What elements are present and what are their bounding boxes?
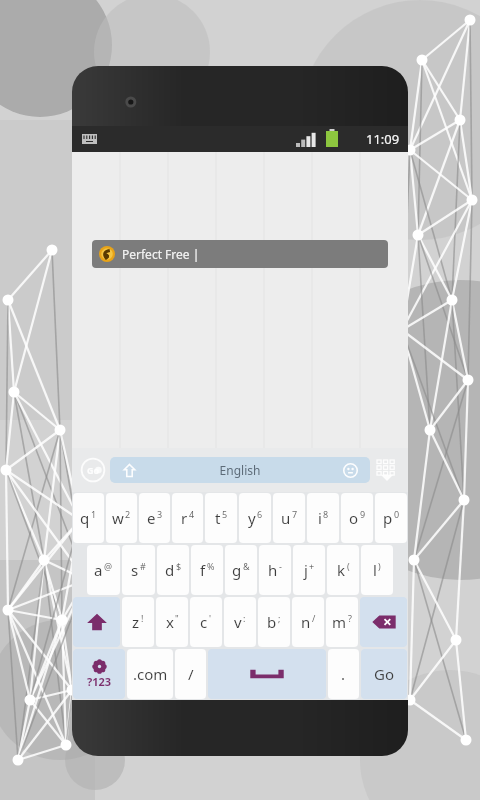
- button[interactable]: z: [122, 597, 154, 647]
- staticText: 8: [323, 508, 329, 520]
- staticText: Go: [374, 664, 394, 684]
- button[interactable]: /: [175, 649, 206, 699]
- staticText: k: [337, 560, 346, 580]
- button[interactable]: g: [225, 545, 257, 595]
- button[interactable]: Perfect Free |: [92, 240, 388, 268]
- staticText: u: [281, 508, 291, 528]
- button[interactable]: d: [157, 545, 189, 595]
- staticText: -: [279, 560, 282, 572]
- button[interactable]: t: [205, 493, 237, 543]
- button[interactable]: a: [87, 545, 120, 595]
- button[interactable]: Symbols and settings: [73, 649, 125, 699]
- button[interactable]: s: [122, 545, 155, 595]
- staticText: 7: [292, 508, 298, 520]
- button[interactable]: y: [239, 493, 271, 543]
- staticText: h: [268, 560, 278, 580]
- button[interactable]: v: [224, 597, 256, 647]
- staticText: Perfect Free |: [122, 246, 200, 262]
- staticText: e: [147, 508, 156, 528]
- button[interactable]: k: [327, 545, 359, 595]
- button[interactable]: Space: [208, 649, 326, 699]
- staticText: d: [165, 560, 175, 580]
- staticText: 6: [257, 508, 263, 520]
- staticText: .: [341, 664, 346, 684]
- staticText: $: [176, 560, 182, 572]
- staticText: (: [347, 560, 350, 572]
- button[interactable]: Shift: [73, 597, 120, 647]
- staticText: t: [215, 508, 221, 528]
- staticText: English: [137, 462, 343, 478]
- staticText: %: [207, 560, 215, 572]
- button[interactable]: f: [191, 545, 223, 595]
- staticText: a: [94, 560, 103, 580]
- button[interactable]: r: [172, 493, 203, 543]
- button[interactable]: b: [258, 597, 290, 647]
- button[interactable]: Hide keyboard: [370, 453, 404, 487]
- staticText: 3: [157, 508, 163, 520]
- staticText: +: [309, 560, 315, 572]
- button[interactable]: p: [375, 493, 407, 543]
- staticText: r: [181, 508, 188, 528]
- staticText: 9: [360, 508, 366, 520]
- staticText: /: [312, 612, 316, 624]
- staticText: Go: [87, 464, 100, 476]
- button[interactable]: e: [139, 493, 170, 543]
- button[interactable]: o: [341, 493, 373, 543]
- staticText: i: [318, 508, 322, 528]
- staticText: m: [332, 612, 347, 632]
- staticText: z: [132, 612, 140, 632]
- button[interactable]: Go: [361, 649, 407, 699]
- staticText: ;: [278, 612, 281, 624]
- button[interactable]: .com: [127, 649, 173, 699]
- staticText: f: [200, 560, 206, 580]
- button[interactable]: u: [273, 493, 305, 543]
- button[interactable]: GO Keyboard menu: [76, 453, 110, 487]
- staticText: ?: [348, 612, 352, 624]
- staticText: g: [232, 560, 242, 580]
- button[interactable]: .: [328, 649, 359, 699]
- staticText: j: [304, 560, 308, 580]
- staticText: /: [188, 664, 194, 684]
- staticText: p: [383, 508, 393, 528]
- staticText: !: [141, 612, 144, 624]
- button[interactable]: c: [190, 597, 222, 647]
- staticText: &: [243, 560, 250, 572]
- staticText: 5: [222, 508, 228, 520]
- staticText: :: [243, 612, 246, 624]
- staticText: ': [209, 612, 212, 624]
- button[interactable]: m: [326, 597, 358, 647]
- staticText: b: [267, 612, 277, 632]
- staticText: s: [131, 560, 139, 580]
- staticText: 11:09: [366, 130, 400, 148]
- staticText: 0: [394, 508, 400, 520]
- staticText: c: [200, 612, 208, 632]
- staticText: 2: [125, 508, 131, 520]
- staticText: l: [373, 560, 377, 580]
- staticText: n: [301, 612, 311, 632]
- staticText: .com: [133, 664, 168, 684]
- button[interactable]: Backspace: [360, 597, 407, 647]
- staticText: o: [349, 508, 359, 528]
- staticText: ": [175, 612, 179, 624]
- staticText: #: [140, 560, 146, 572]
- button[interactable]: w: [106, 493, 137, 543]
- button[interactable]: n: [292, 597, 324, 647]
- button[interactable]: l: [361, 545, 393, 595]
- staticText: @: [104, 560, 113, 572]
- staticText: ): [378, 560, 381, 572]
- staticText: w: [112, 508, 124, 528]
- button[interactable]: x: [156, 597, 188, 647]
- staticText: y: [248, 508, 256, 528]
- button[interactable]: h: [259, 545, 291, 595]
- button[interactable]: i: [307, 493, 339, 543]
- button[interactable]: q: [73, 493, 104, 543]
- staticText: ?123: [87, 674, 112, 689]
- staticText: v: [234, 612, 242, 632]
- staticText: q: [80, 508, 90, 528]
- button[interactable]: English: [110, 457, 370, 483]
- button[interactable]: j: [293, 545, 325, 595]
- staticText: 1: [91, 508, 97, 520]
- staticText: 4: [189, 508, 195, 520]
- staticText: x: [166, 612, 174, 632]
